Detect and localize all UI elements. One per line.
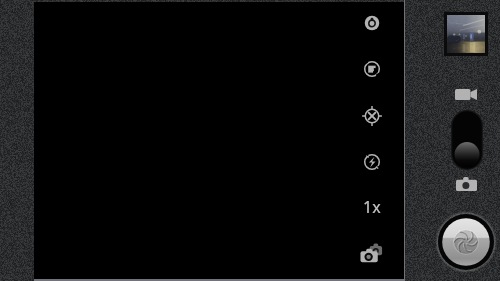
button[interactable]: Store location [358, 55, 386, 83]
button[interactable]: Flash off [358, 148, 386, 176]
staticText: 1x [363, 196, 381, 218]
button[interactable]: Video mode [455, 89, 477, 100]
button[interactable]: White balance [358, 9, 386, 37]
button[interactable]: Focus mode [358, 102, 386, 130]
button[interactable]: Switch camera [360, 243, 384, 265]
button[interactable]: Camera video mode switch [451, 110, 483, 170]
button[interactable]: Shutter [438, 214, 494, 270]
button[interactable]: Last photo [444, 12, 488, 56]
button[interactable]: 1x [357, 195, 387, 219]
button[interactable]: Camera mode [456, 177, 477, 191]
